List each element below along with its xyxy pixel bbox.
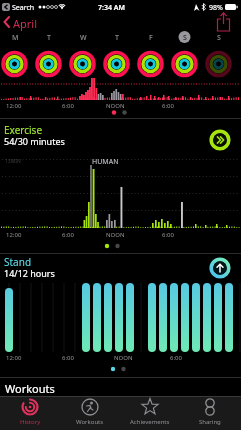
staticText: Achievements [130, 418, 170, 426]
staticText: 6:00 [162, 231, 174, 239]
button[interactable]: Workouts [0, 377, 241, 396]
button[interactable]: Sharing [180, 396, 240, 430]
staticText: NOON [106, 231, 125, 239]
staticText: T [115, 33, 119, 43]
staticText: History [20, 418, 41, 426]
button[interactable]: April [0, 13, 50, 31]
staticText: NOON [106, 102, 125, 110]
staticText: Workouts [76, 418, 104, 426]
staticText: 12:00 [6, 231, 22, 239]
staticText: T [47, 33, 51, 43]
staticText: April [13, 16, 38, 31]
staticText: 6:00 [62, 231, 74, 239]
button[interactable] [212, 11, 236, 33]
button[interactable]: Exercise [0, 119, 241, 153]
staticText: 12:00 [6, 354, 22, 362]
staticText: Exercise [4, 123, 43, 137]
button[interactable]: History [0, 396, 60, 430]
staticText: 14/12 hours [4, 267, 55, 279]
staticText: W [80, 33, 87, 43]
staticText: NOON [114, 354, 133, 362]
staticText: S [217, 33, 221, 43]
staticText: Sharing [199, 418, 221, 426]
staticText: S [183, 33, 187, 43]
staticText: 6:00 [62, 354, 74, 362]
staticText: M [12, 33, 19, 43]
button[interactable]: Workouts [60, 396, 120, 430]
staticText: 6:00 [62, 102, 74, 110]
staticText: Stand [4, 255, 32, 269]
staticText: HUMAN [92, 157, 119, 167]
staticText: 7:34 AM [98, 3, 125, 13]
staticText: F [149, 33, 153, 43]
staticText: 6:00 [170, 354, 182, 362]
button[interactable]: Achievements [120, 396, 180, 430]
staticText: 54/30 minutes [4, 135, 65, 147]
staticText: Search [12, 3, 35, 13]
staticText: 98% [209, 3, 223, 13]
staticText: 13MIN [5, 158, 21, 165]
staticText: 12:00 [6, 102, 22, 110]
staticText: 6:00 [162, 102, 174, 110]
staticText: Workouts [5, 381, 55, 396]
button[interactable]: Stand [0, 254, 241, 282]
